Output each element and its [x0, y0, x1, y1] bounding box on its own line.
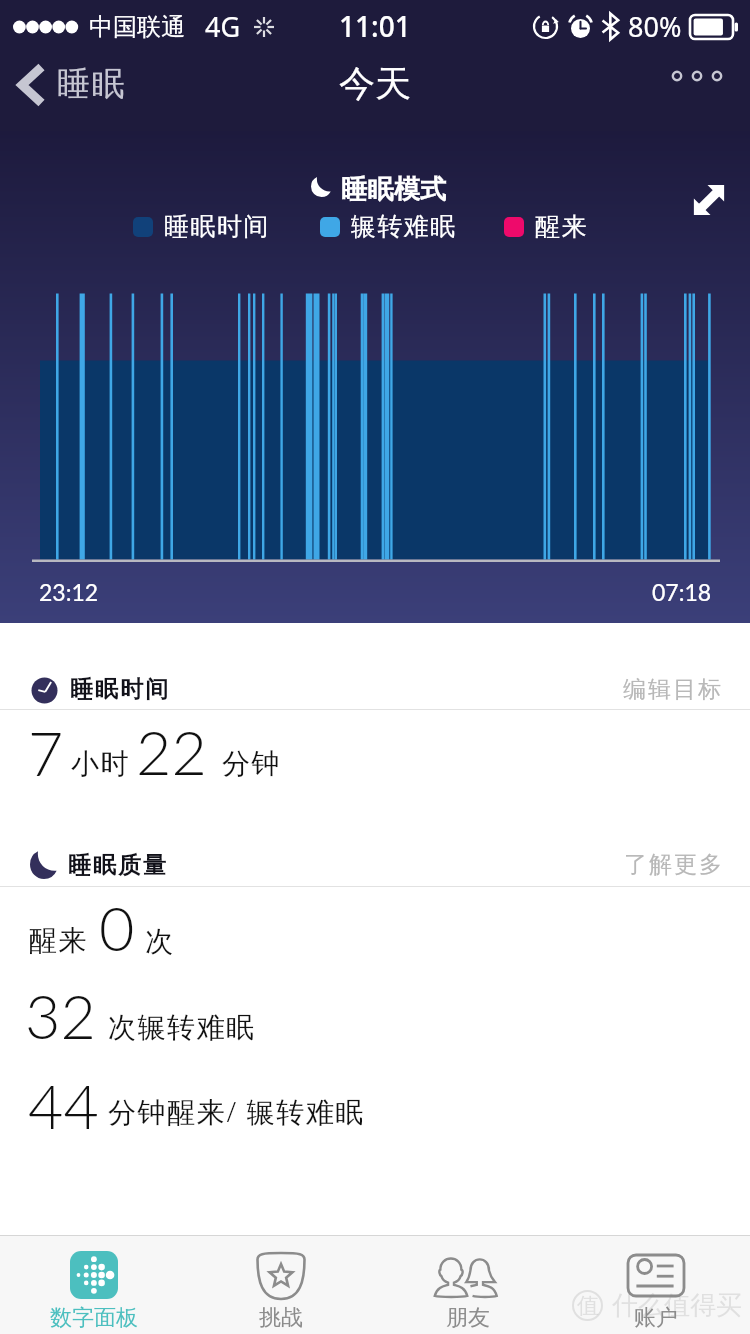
- staticText: 辗转难眠: [351, 211, 457, 242]
- staticText: 32: [25, 979, 96, 1052]
- staticText: 小时: [71, 746, 131, 781]
- staticText: 编辑目标: [622, 675, 722, 704]
- staticText: 睡眠: [56, 63, 126, 105]
- button[interactable]: 数字面板: [0, 1236, 187, 1334]
- button[interactable]: 睡眠时间: [31, 675, 169, 704]
- button[interactable]: 朋友: [374, 1236, 562, 1334]
- staticText: 睡眠模式: [341, 173, 447, 206]
- button[interactable]: More options: [648, 58, 750, 94]
- staticText: 分钟醒来/ 辗转难眠: [108, 1092, 365, 1130]
- staticText: 次: [145, 924, 175, 959]
- staticText: 朋友: [446, 1304, 490, 1332]
- staticText: 07:18: [652, 578, 712, 606]
- staticText: 睡眠质量: [67, 851, 167, 880]
- staticText: 4G: [205, 8, 241, 45]
- staticText: 什么值得买: [612, 1289, 742, 1322]
- button[interactable]: 睡眠: [0, 55, 140, 111]
- staticText: 次辗转难眠: [107, 1010, 255, 1045]
- staticText: 44: [28, 1069, 99, 1142]
- staticText: 分钟: [222, 746, 282, 781]
- staticText: 中国联通: [89, 12, 185, 42]
- staticText: 23:12: [39, 578, 99, 606]
- staticText: 醒来: [29, 923, 89, 958]
- button[interactable]: 账户: [562, 1236, 750, 1334]
- staticText: 账户: [634, 1304, 678, 1332]
- staticText: 数字面板: [50, 1304, 138, 1332]
- staticText: 挑战: [259, 1304, 303, 1332]
- staticText: 22: [136, 715, 207, 788]
- staticText: 11:01: [339, 7, 411, 45]
- staticText: 今天: [339, 61, 411, 106]
- staticText: 0: [99, 891, 135, 964]
- staticText: 值: [577, 1292, 599, 1320]
- staticText: 了解更多: [623, 850, 723, 879]
- button[interactable]: Expand chart: [676, 167, 750, 231]
- button[interactable]: 编辑目标: [0, 668, 750, 704]
- staticText: 醒来: [535, 211, 588, 242]
- button[interactable]: 了解更多: [0, 843, 750, 879]
- staticText: 睡眠时间: [164, 211, 270, 242]
- staticText: 80%: [628, 8, 682, 45]
- staticText: 睡眠时间: [69, 675, 169, 704]
- button[interactable]: 挑战: [187, 1236, 374, 1334]
- button[interactable]: 睡眠质量: [30, 850, 167, 879]
- staticText: 7: [28, 716, 64, 789]
